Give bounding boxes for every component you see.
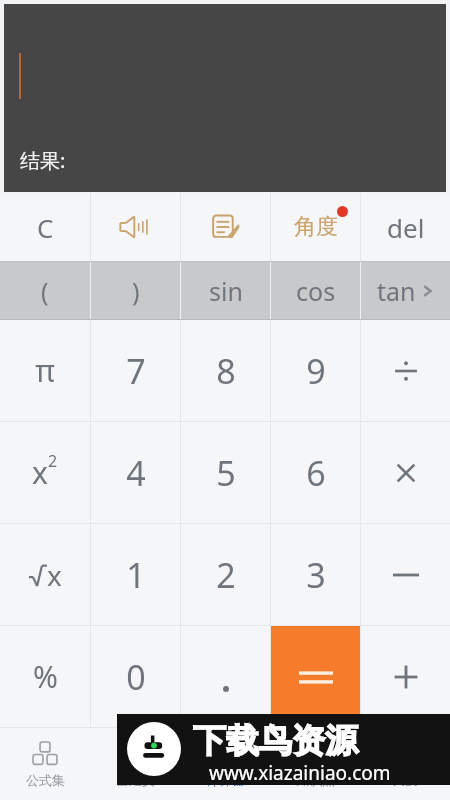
staticText: 2 bbox=[48, 450, 58, 472]
button[interactable]: x bbox=[0, 422, 90, 523]
button[interactable]: ) bbox=[91, 262, 180, 319]
button[interactable] bbox=[361, 422, 450, 523]
button[interactable]: Sound bbox=[91, 193, 180, 261]
staticText: 7 bbox=[126, 348, 146, 394]
button[interactable]: 3 bbox=[271, 524, 360, 625]
staticText: π bbox=[35, 350, 55, 391]
button[interactable]: 5 bbox=[181, 422, 270, 523]
button[interactable]: 9 bbox=[271, 320, 360, 421]
staticText: 4 bbox=[126, 450, 146, 496]
staticText: 3 bbox=[306, 552, 326, 598]
button[interactable]: 2 bbox=[181, 524, 270, 625]
staticText: del bbox=[387, 210, 425, 245]
button[interactable]: tan bbox=[361, 262, 450, 319]
staticText: 1 bbox=[126, 552, 146, 598]
button[interactable]: 计算器 bbox=[180, 728, 270, 800]
button[interactable]: 公式集 bbox=[0, 728, 90, 800]
staticText: 结果: bbox=[20, 147, 66, 174]
staticText: 计算器 bbox=[206, 772, 245, 788]
staticText: 公式集 bbox=[26, 772, 65, 788]
button[interactable]: 知识点 bbox=[270, 728, 360, 800]
staticText: tan bbox=[377, 274, 416, 308]
staticText: 我的 bbox=[392, 772, 418, 788]
staticText: www.xiazainiao.com bbox=[209, 760, 391, 786]
staticText: ( bbox=[41, 274, 49, 308]
button[interactable]: % bbox=[0, 626, 90, 727]
staticText: 角度 bbox=[294, 213, 338, 241]
staticText: C bbox=[37, 210, 54, 245]
button[interactable]: π bbox=[0, 320, 90, 421]
staticText: % bbox=[33, 656, 58, 697]
button[interactable]: Angle mode bbox=[271, 193, 360, 261]
button[interactable]: cos bbox=[271, 262, 360, 319]
staticText: ) bbox=[132, 274, 140, 308]
staticText: cos bbox=[296, 274, 336, 308]
button[interactable]: 7 bbox=[91, 320, 180, 421]
staticText: 2 bbox=[216, 552, 236, 598]
button[interactable]: sin bbox=[181, 262, 270, 319]
button[interactable]: 自定义 bbox=[90, 728, 180, 800]
button[interactable] bbox=[361, 524, 450, 625]
staticText: 下载鸟资源 bbox=[193, 720, 358, 762]
staticText: x bbox=[32, 452, 48, 493]
button[interactable] bbox=[271, 626, 360, 727]
button[interactable]: 0 bbox=[91, 626, 180, 727]
staticText: 知识点 bbox=[296, 772, 335, 788]
button[interactable] bbox=[361, 320, 450, 421]
button[interactable]: 我的 bbox=[360, 728, 450, 800]
button[interactable]: 8 bbox=[181, 320, 270, 421]
staticText: 6 bbox=[306, 450, 326, 496]
button[interactable] bbox=[361, 626, 450, 727]
staticText: 0 bbox=[126, 654, 146, 700]
staticText: 9 bbox=[306, 348, 326, 394]
button[interactable]: 1 bbox=[91, 524, 180, 625]
button[interactable]: x bbox=[0, 524, 90, 625]
button[interactable]: 4 bbox=[91, 422, 180, 523]
staticText: 5 bbox=[216, 450, 236, 496]
button[interactable]: C bbox=[0, 193, 90, 261]
staticText: sin bbox=[209, 274, 243, 308]
button[interactable]: Notes bbox=[181, 193, 270, 261]
button[interactable] bbox=[181, 626, 270, 727]
staticText: 自定义 bbox=[116, 772, 155, 788]
button[interactable]: ( bbox=[0, 262, 90, 319]
staticText: x bbox=[47, 556, 62, 594]
button[interactable]: del bbox=[361, 193, 450, 261]
staticText: 8 bbox=[216, 348, 236, 394]
button[interactable]: 6 bbox=[271, 422, 360, 523]
